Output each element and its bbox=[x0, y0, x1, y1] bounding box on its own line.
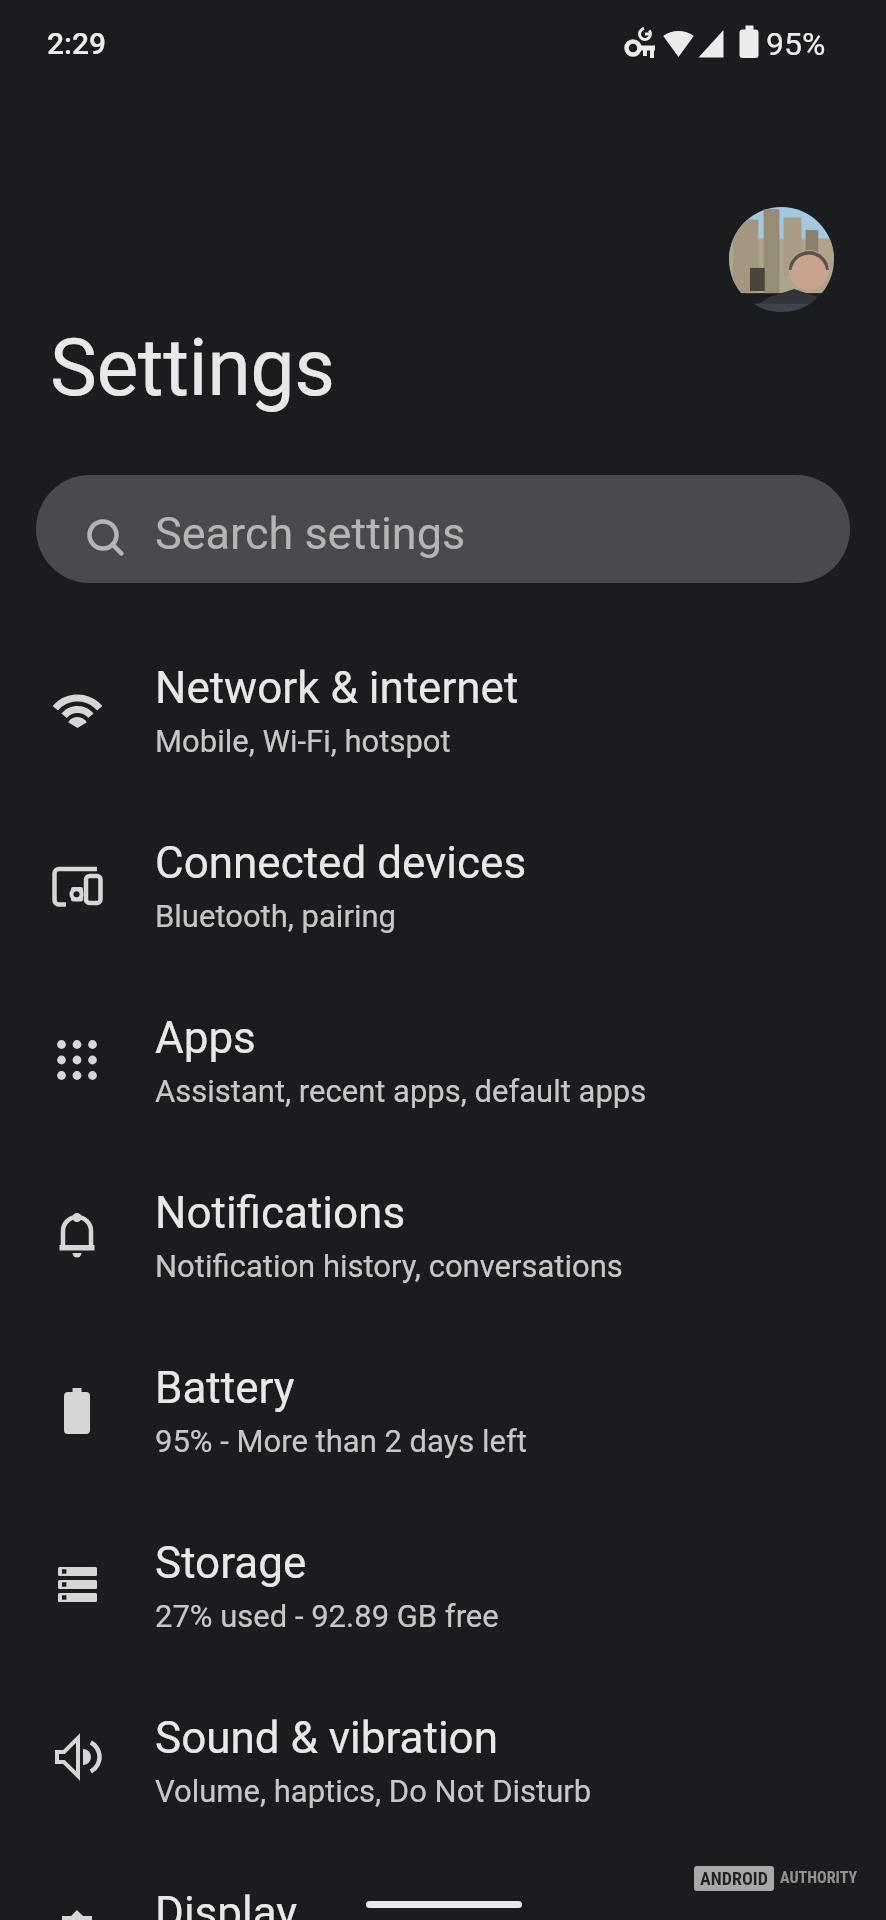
staticText: Mobile, Wi-Fi, hotspot bbox=[155, 723, 451, 759]
button[interactable]: Network & internet bbox=[0, 623, 886, 798]
staticText: Bluetooth, pairing bbox=[155, 898, 396, 934]
button[interactable]: Notifications bbox=[0, 1148, 886, 1323]
staticText: Connected devices bbox=[155, 837, 527, 889]
button[interactable]: Apps bbox=[0, 973, 886, 1148]
staticText: Notification history, conversations bbox=[155, 1248, 623, 1284]
staticText: 2:29 bbox=[47, 26, 107, 61]
staticText: ANDROID bbox=[700, 1868, 768, 1889]
staticText: Display bbox=[155, 1887, 298, 1920]
staticText: Apps bbox=[155, 1012, 256, 1064]
button[interactable]: Sound & vibration bbox=[0, 1673, 886, 1848]
staticText: AUTHORITY bbox=[780, 1868, 858, 1887]
staticText: Search settings bbox=[155, 507, 466, 560]
button[interactable]: Display bbox=[0, 1848, 886, 1920]
staticText: Sound & vibration bbox=[155, 1712, 498, 1764]
staticText: Network & internet bbox=[155, 662, 519, 714]
staticText: 27% used - 92.89 GB free bbox=[155, 1598, 499, 1634]
staticText: Settings bbox=[50, 322, 335, 415]
button[interactable]: Battery bbox=[0, 1323, 886, 1498]
staticText: Battery bbox=[155, 1362, 295, 1414]
staticText: Notifications bbox=[155, 1187, 406, 1239]
staticText: 95% - More than 2 days left bbox=[155, 1423, 527, 1459]
button[interactable]: Connected devices bbox=[0, 798, 886, 973]
button[interactable] bbox=[36, 475, 850, 583]
staticText: Storage bbox=[155, 1537, 307, 1589]
button[interactable] bbox=[729, 207, 834, 312]
staticText: Assistant, recent apps, default apps bbox=[155, 1073, 647, 1109]
staticText: 95% bbox=[766, 25, 826, 63]
button[interactable]: Storage bbox=[0, 1498, 886, 1673]
staticText: Volume, haptics, Do Not Disturb bbox=[155, 1773, 592, 1809]
